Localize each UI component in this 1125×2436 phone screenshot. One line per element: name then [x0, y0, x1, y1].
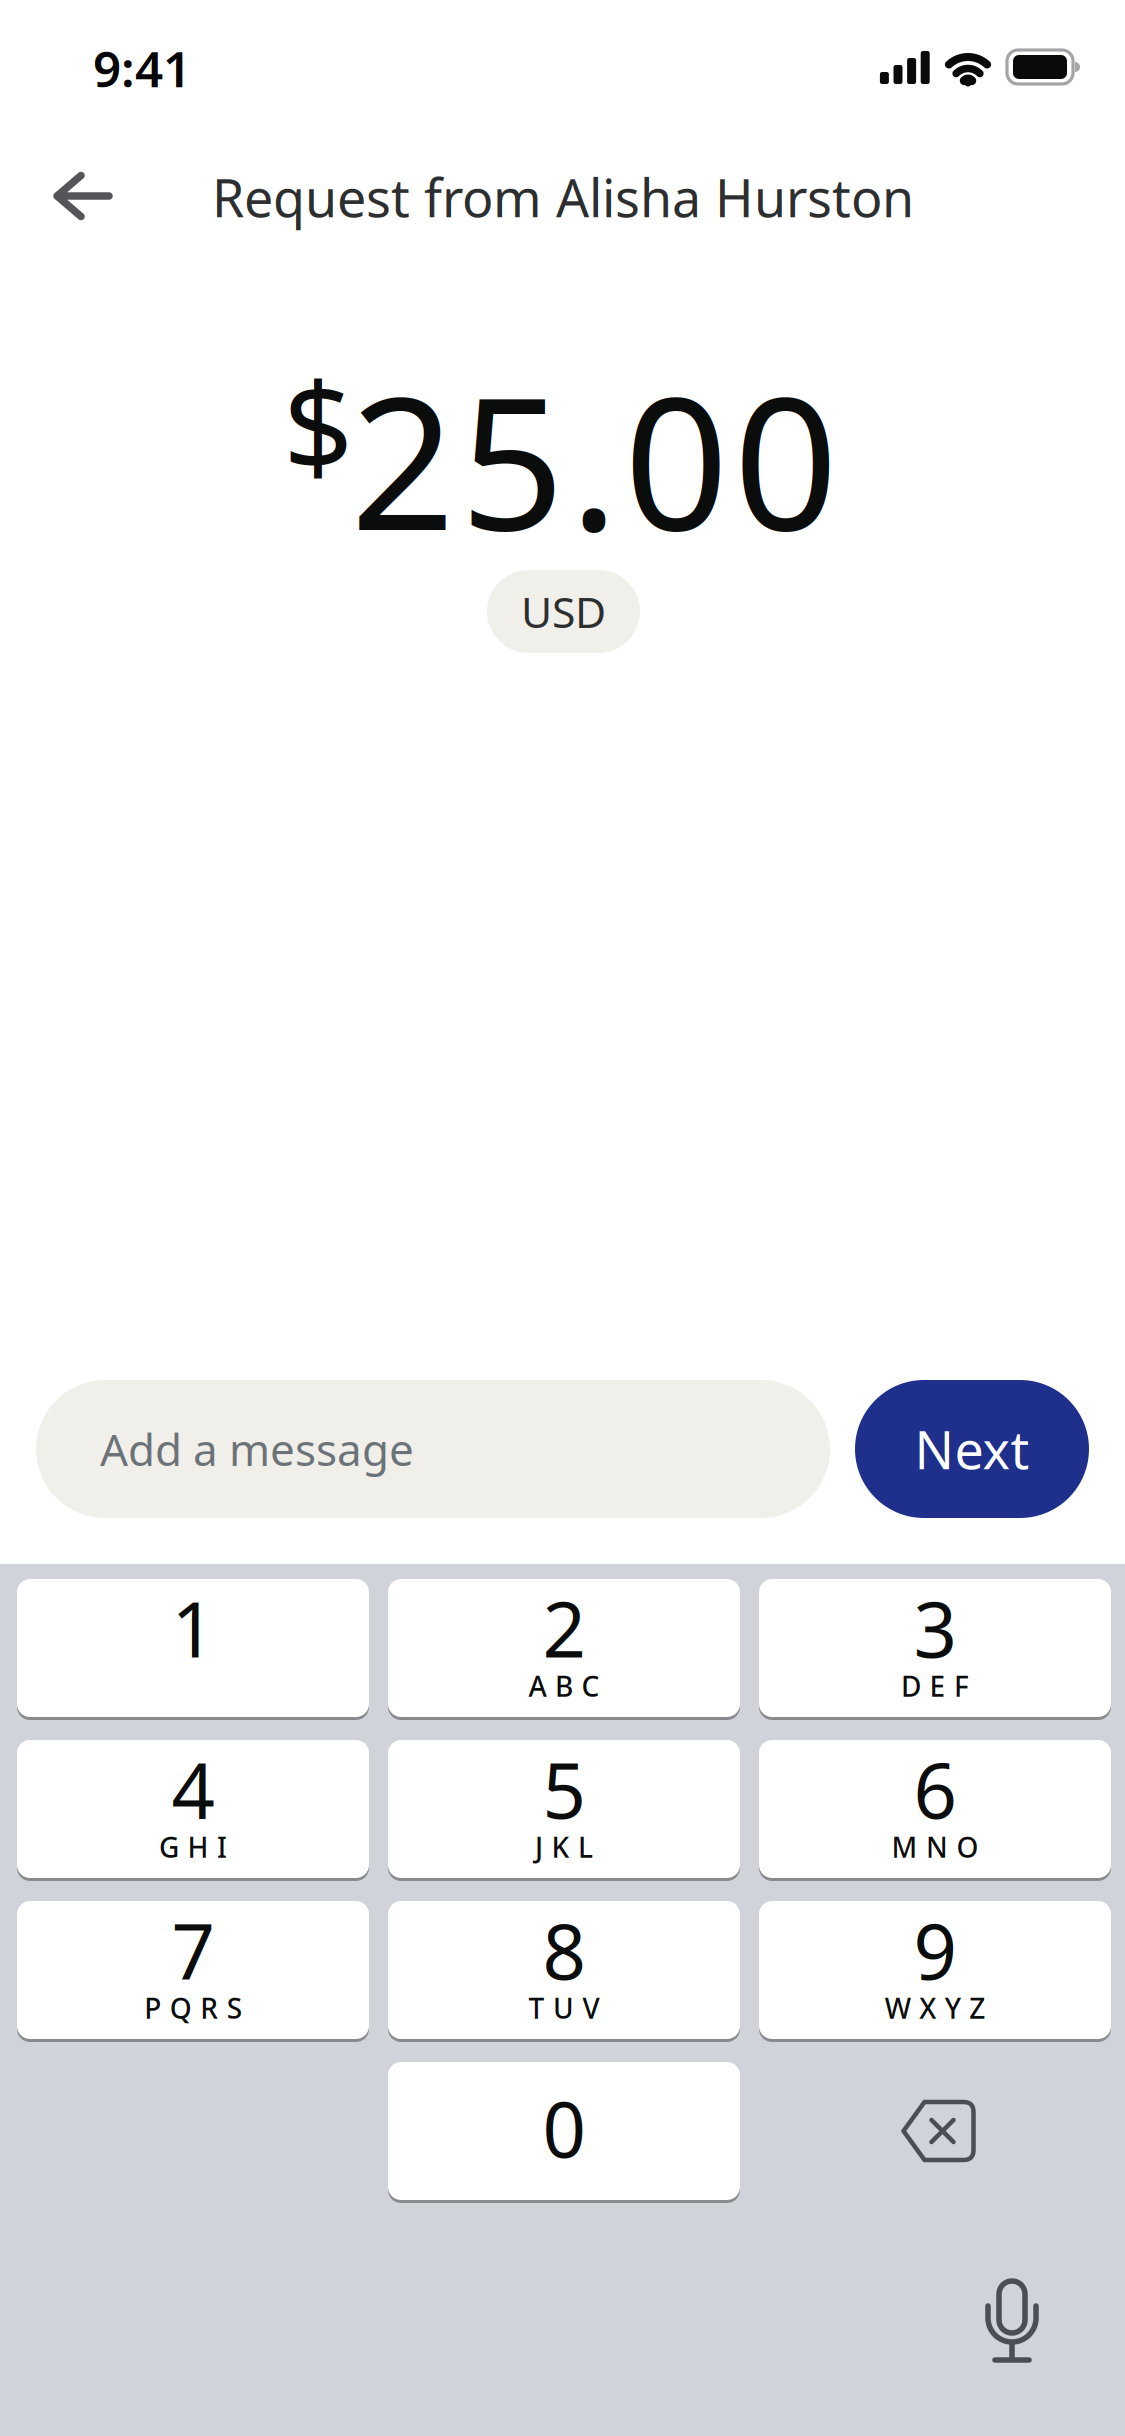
staticText: Add a message [100, 1420, 414, 1478]
staticText: 4 [171, 1738, 214, 1839]
staticText: TUV [528, 1989, 599, 2027]
button[interactable]: Dictation [977, 2271, 1047, 2373]
button[interactable]: 7 [17, 1901, 369, 2039]
staticText: 9 [913, 1899, 956, 2000]
button[interactable]: Currency USD [487, 570, 640, 653]
button[interactable]: 1 [17, 1579, 369, 1717]
button[interactable]: 3 [759, 1579, 1111, 1717]
staticText: WXYZ [885, 1989, 985, 2027]
staticText: 2 [542, 1577, 585, 1678]
button[interactable]: Delete [762, 2062, 1114, 2200]
button[interactable]: 6 [759, 1740, 1111, 1878]
staticText: 9:41 [93, 35, 191, 101]
staticText: 5 [542, 1738, 585, 1839]
staticText: 3 [913, 1577, 956, 1678]
staticText: USD [521, 583, 606, 640]
button[interactable]: 2 [388, 1579, 740, 1717]
staticText: JKL [535, 1828, 593, 1866]
staticText: MNO [891, 1828, 978, 1866]
button[interactable]: 9 [759, 1901, 1111, 2039]
staticText: 0 [542, 2077, 585, 2178]
button[interactable]: 4 [17, 1740, 369, 1878]
staticText: Next [914, 1414, 1029, 1484]
staticText: PQRS [144, 1989, 242, 2027]
staticText: Request from Alisha Hurston [212, 162, 914, 232]
staticText: 1 [171, 1577, 214, 1678]
staticText: $ [283, 343, 353, 505]
button[interactable]: Back [43, 161, 123, 230]
staticText: GHI [159, 1828, 227, 1866]
button[interactable]: 8 [388, 1901, 740, 2039]
staticText: 7 [171, 1899, 214, 2000]
staticText: ABC [528, 1667, 599, 1705]
button[interactable]: Next [855, 1380, 1089, 1518]
staticText: 6 [913, 1738, 956, 1839]
staticText: DEF [901, 1667, 969, 1705]
button[interactable]: Add a message [36, 1380, 830, 1518]
button[interactable]: 0 [388, 2062, 740, 2200]
staticText: 25.00 [350, 338, 837, 580]
staticText: 8 [542, 1899, 585, 2000]
button[interactable]: 5 [388, 1740, 740, 1878]
